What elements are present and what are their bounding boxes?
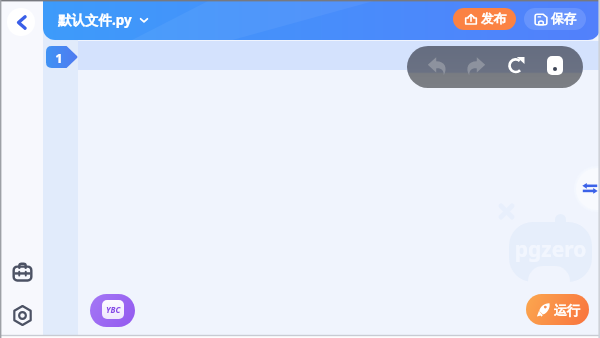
button[interactable]: Swap panel xyxy=(574,166,600,212)
button[interactable]: Back xyxy=(7,8,35,36)
button[interactable]: 运行 xyxy=(526,294,589,325)
button[interactable]: Hide keyboard xyxy=(536,47,573,84)
button[interactable]: 发布 xyxy=(453,8,516,30)
staticText: 1 xyxy=(46,49,72,68)
button[interactable]: 默认文件.py xyxy=(56,7,152,33)
staticText: 运行 xyxy=(554,302,580,318)
button[interactable]: Refresh xyxy=(498,46,535,83)
button[interactable]: Settings xyxy=(6,299,38,331)
button[interactable]: 保存 xyxy=(524,8,586,30)
button[interactable]: YBC xyxy=(90,294,135,327)
button[interactable]: Toolbox xyxy=(6,256,38,288)
button[interactable]: Undo xyxy=(418,47,455,84)
button[interactable]: Redo xyxy=(457,47,495,85)
staticText: 默认文件.py xyxy=(58,11,132,29)
staticText: pgzero xyxy=(509,235,592,264)
staticText: 保存 xyxy=(551,11,576,27)
staticText: YBC xyxy=(106,304,121,315)
staticText: 发布 xyxy=(481,11,506,27)
